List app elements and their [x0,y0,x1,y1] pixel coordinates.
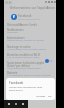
staticText: f [13,14,15,20]
staticText: Notifications [7,28,24,32]
staticText: Appareil photo, Contacts et 3 autres [7,39,44,42]
staticText: version 400.0.0.34.76 [18,18,40,21]
staticText: Aucun élément par défaut défini [7,67,41,70]
staticText: Voulez-vous désinstaller cette [9,85,43,88]
button[interactable]: Autorisations [4,35,56,42]
staticText: Informations sur l'application [11,6,55,10]
staticText: Autorisées [7,31,18,34]
staticText: Superposer à d'autres applis [7,61,45,65]
staticText: Données mobiles et Wi-Fi [7,53,41,57]
button[interactable]: Back [8,5,13,10]
staticText: Désinstaller [7,23,23,27]
staticText: Annuler [36,94,46,97]
button[interactable]: OK [47,93,53,98]
staticText: Autorisations [7,36,25,40]
staticText: Facebook [9,81,24,85]
staticText: OK [48,94,52,97]
button[interactable]: Données mobiles et Wi-Fi [4,52,56,59]
staticText: 0 % d'utilisation depuis la charge compl… [7,74,51,77]
button[interactable]: Stockage et cache [4,44,56,51]
staticText: Forcer l'arrêt [20,23,37,27]
button[interactable]: Ouvrir par défaut [4,63,56,70]
button[interactable]: More options [45,5,50,10]
staticText: Ouvrir par défaut [7,64,30,68]
button[interactable]: Notifications [4,27,56,34]
staticText: Batterie [7,71,18,75]
staticText: 10:35 [5,1,12,5]
staticText: Facebook [18,14,32,18]
staticText: 1,25 Go utilisés depuis le 1 janv. [7,56,40,59]
button[interactable]: Annuler [35,93,47,98]
button[interactable]: Batterie [4,70,56,77]
button[interactable]: Toggle overlay [44,58,54,64]
staticText: application ? [9,88,24,91]
staticText: Stockage et cache [7,45,31,49]
staticText: 142 Mo utilisés dans Stockage interne [7,48,46,51]
